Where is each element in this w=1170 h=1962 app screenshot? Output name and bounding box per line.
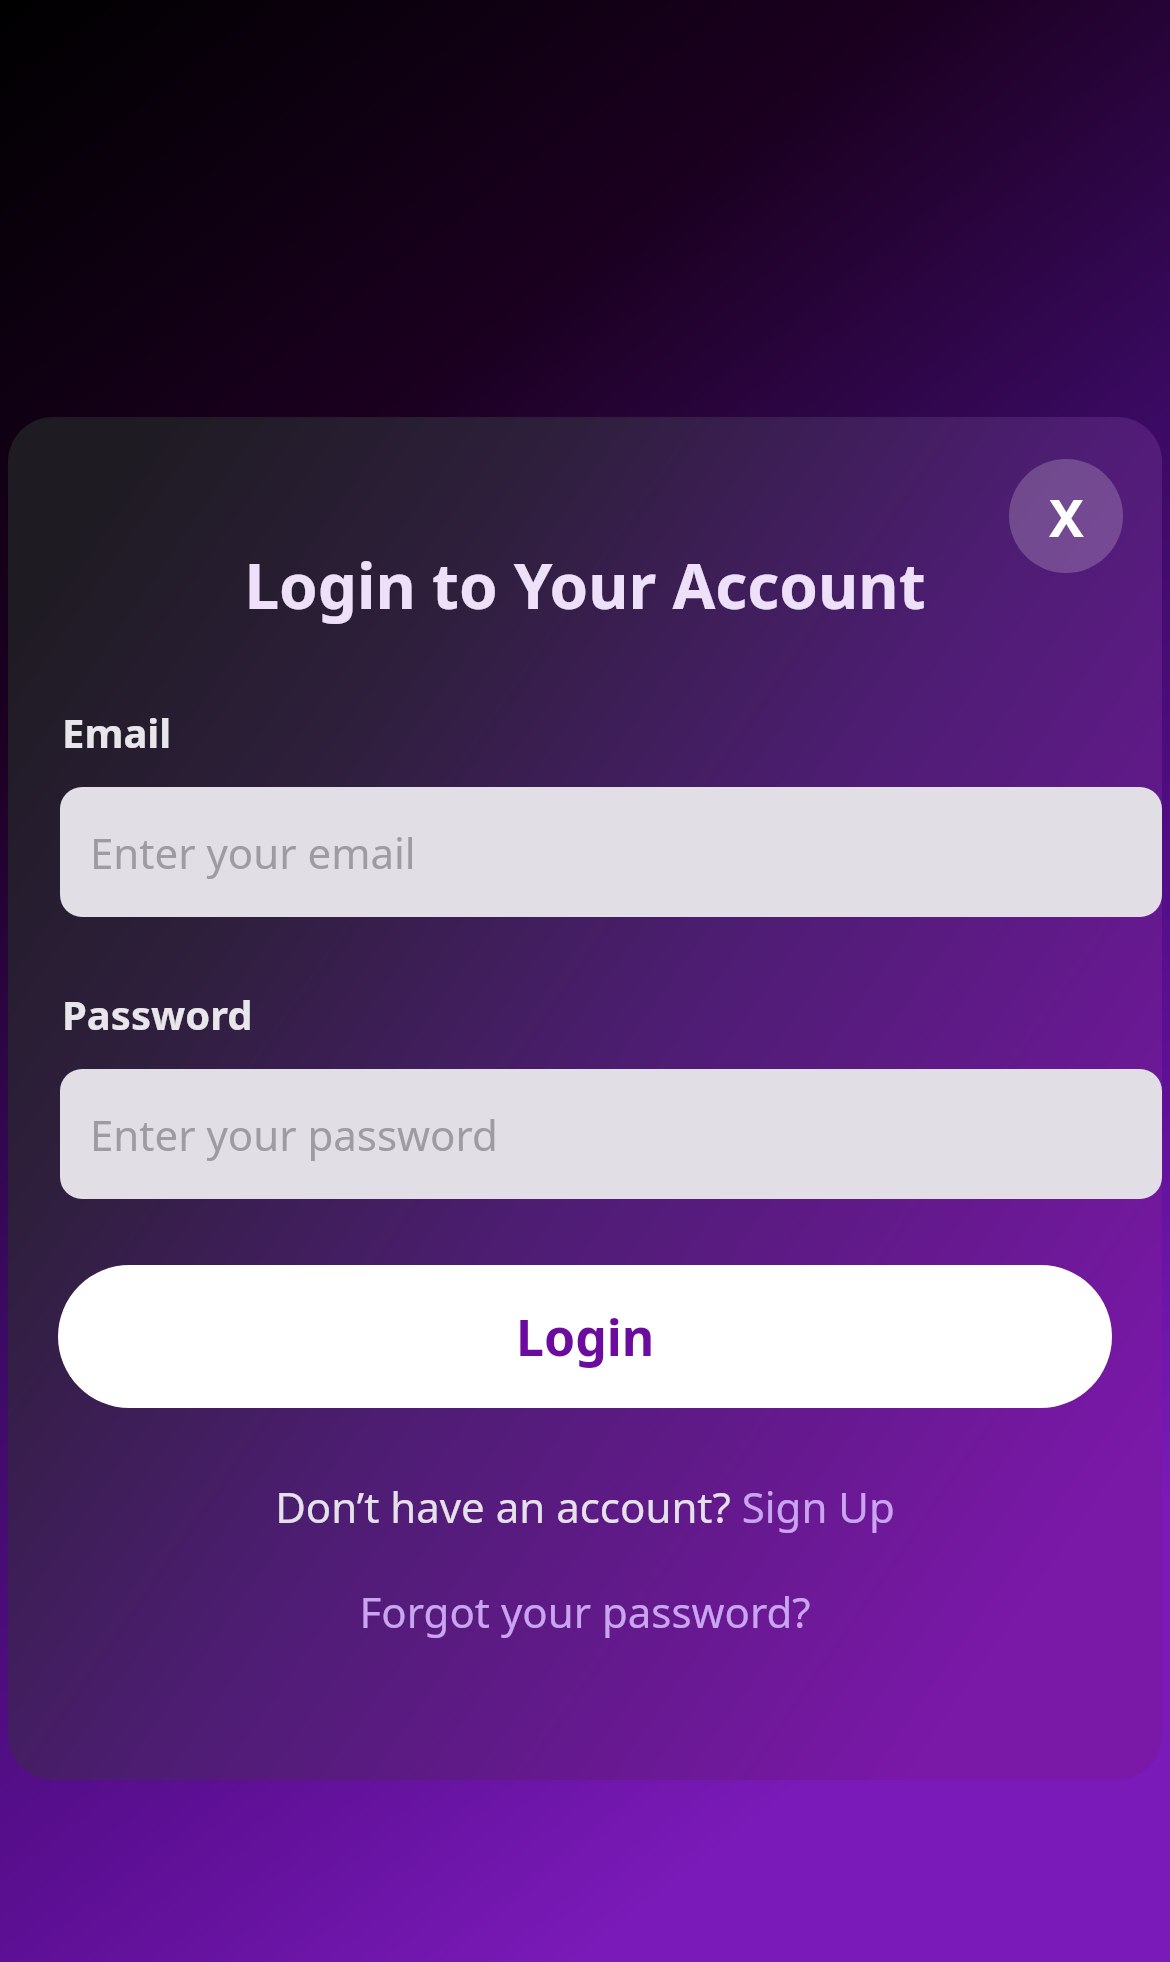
staticText: Login [516,1303,655,1371]
button[interactable]: Enter your email [60,787,1162,917]
staticText: Don’t have an account? Sign Up [275,1478,895,1535]
staticText: Password [62,987,253,1041]
staticText: Enter your email [90,824,416,881]
button[interactable]: Login [58,1265,1112,1408]
staticText: X [1049,481,1084,552]
staticText: Email [62,705,172,759]
button[interactable]: Enter your password [60,1069,1162,1199]
staticText: Enter your password [90,1106,498,1163]
button[interactable]: Close [1009,459,1123,573]
staticText: Login to Your Account [32,543,1138,627]
button[interactable]: Don’t have an account? Sign Up [8,1478,1162,1535]
staticText: Forgot your password? [359,1583,811,1640]
button[interactable]: Forgot your password? [8,1583,1162,1640]
